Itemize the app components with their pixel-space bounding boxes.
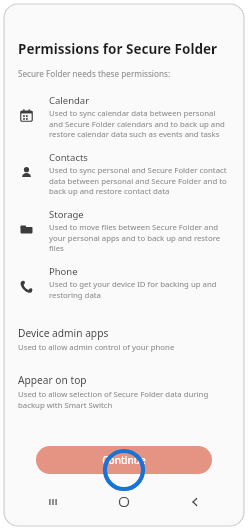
button[interactable]: Storage — [4, 202, 244, 259]
staticText: Storage — [49, 208, 84, 221]
staticText: Continue — [102, 453, 146, 467]
staticText: Permissions for Secure Folder — [18, 40, 218, 58]
staticText: Appear on top — [18, 373, 87, 387]
button[interactable]: Appear on top — [4, 368, 244, 415]
button[interactable]: Contacts — [4, 145, 244, 202]
staticText: Used to allow admin control of your phon… — [18, 342, 175, 353]
staticText: Used to allow selection of Secure Folder… — [18, 389, 230, 410]
button[interactable]: Continue — [36, 446, 212, 474]
button[interactable]: Home — [102, 486, 146, 518]
staticText: Phone — [49, 265, 78, 278]
staticText: Used to sync personal and Secure Folder … — [49, 165, 230, 196]
staticText: Calendar — [49, 94, 90, 107]
button[interactable]: Phone — [4, 259, 244, 313]
staticText: Secure Folder needs these permissions: — [18, 68, 171, 79]
staticText: Contacts — [49, 151, 88, 164]
button[interactable]: Back — [173, 486, 217, 518]
staticText: Device admin apps — [18, 326, 109, 340]
staticText: Used to sync calendar data between perso… — [49, 108, 230, 139]
staticText: Used to get your device ID for backing u… — [49, 279, 230, 300]
button[interactable]: Recent apps — [31, 486, 75, 518]
button[interactable]: Calendar — [4, 88, 244, 145]
button[interactable]: Device admin apps — [4, 321, 244, 358]
staticText: Used to move files between Secure Folder… — [49, 222, 230, 253]
